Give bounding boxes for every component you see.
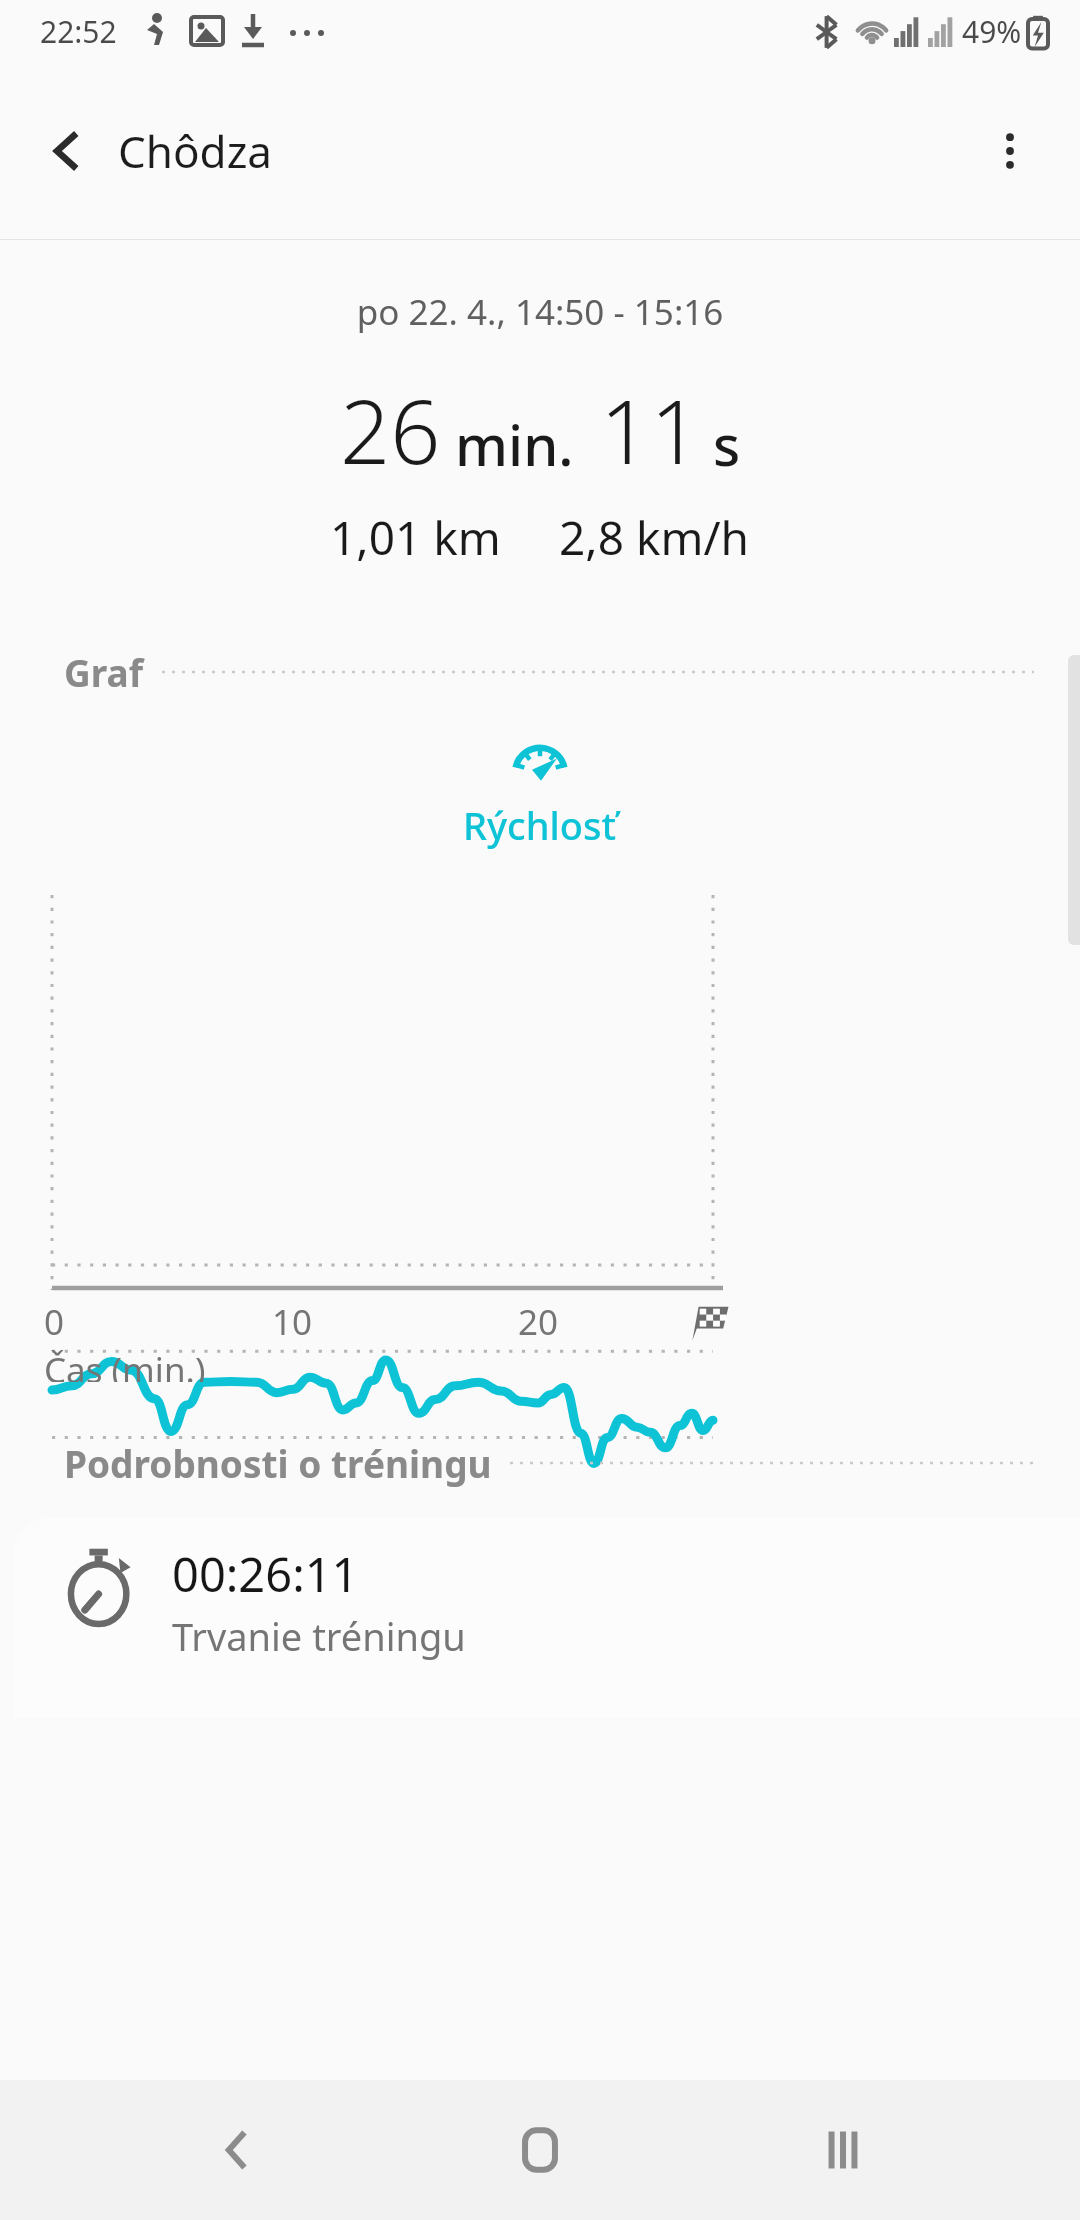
staticText: Trvanie tréningu	[172, 1610, 466, 1662]
button[interactable]: Recent apps	[778, 2085, 908, 2215]
button[interactable]: Back	[173, 2085, 303, 2215]
button[interactable]: Back	[22, 105, 114, 197]
button[interactable]: Rýchlosť	[463, 799, 617, 851]
staticText: Čas (min.)	[44, 1346, 206, 1382]
button[interactable]: Home	[475, 2085, 605, 2215]
button[interactable]: More options	[964, 105, 1056, 197]
staticText: 1,01 km	[330, 506, 501, 569]
staticText: Podrobnosti o tréningu	[64, 1438, 492, 1488]
staticText: 10	[272, 1298, 313, 1346]
staticText: 26	[340, 370, 441, 490]
staticText: 0	[44, 1298, 65, 1346]
staticText: s	[713, 406, 741, 482]
button[interactable]: 00:26:11	[14, 1518, 1080, 1718]
staticText: po 22. 4., 14:50 - 15:16	[0, 288, 1080, 336]
button[interactable]: Speed chart	[508, 729, 572, 781]
staticText: 20	[518, 1298, 559, 1346]
staticText: 2,8 km/h	[559, 506, 750, 569]
staticText: 49%	[962, 11, 1022, 52]
staticText: 22:52	[40, 11, 117, 52]
staticText: 00:26:11	[172, 1542, 359, 1606]
staticText: Graf	[64, 647, 144, 697]
staticText: 11	[600, 370, 701, 490]
staticText: min.	[455, 406, 574, 482]
staticText: Chôdza	[118, 121, 273, 181]
